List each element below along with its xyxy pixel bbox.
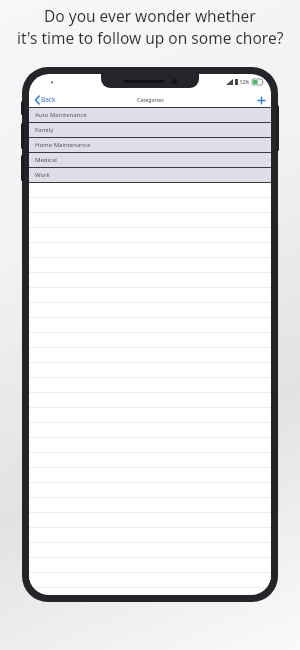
staticText: Family xyxy=(35,126,54,134)
button[interactable]: Back xyxy=(33,94,58,105)
button[interactable]: Home Maintenance xyxy=(29,138,271,152)
button[interactable]: Medical xyxy=(29,153,271,167)
staticText: Categories xyxy=(137,96,164,103)
staticText: Back xyxy=(41,95,56,104)
staticText: Work xyxy=(35,171,50,179)
staticText: Auto Maintenance xyxy=(35,111,87,119)
staticText: Do you ever wonder whether xyxy=(44,5,256,26)
button[interactable]: Auto Maintenance xyxy=(29,108,271,122)
button[interactable]: Family xyxy=(29,123,271,137)
staticText: 52% xyxy=(240,79,250,85)
staticText: Home Maintenance xyxy=(35,141,91,149)
staticText: it's time to follow up on some chore? xyxy=(17,27,284,48)
button[interactable]: Add category xyxy=(255,94,267,106)
button[interactable]: Work xyxy=(29,168,271,182)
staticText: Medical xyxy=(35,156,57,164)
